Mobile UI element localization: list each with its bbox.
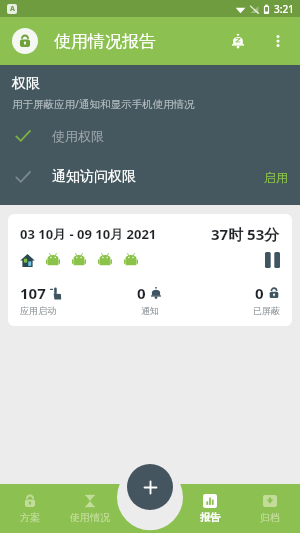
staticText: 方案 bbox=[20, 511, 40, 524]
button[interactable]: App icon bbox=[12, 28, 38, 54]
button[interactable]: 使用情况 bbox=[60, 484, 120, 533]
staticText: 归档 bbox=[260, 511, 280, 524]
button[interactable]: 报告 bbox=[180, 484, 240, 533]
button[interactable]: 通知访问权限 bbox=[12, 162, 288, 192]
staticText: 通知 bbox=[141, 305, 159, 316]
staticText: 0 bbox=[255, 283, 264, 303]
button[interactable]: Notifications bbox=[218, 21, 258, 61]
button[interactable]: 方案 bbox=[0, 484, 60, 533]
button[interactable]: 使用权限 bbox=[12, 122, 288, 150]
staticText: 03 10月 - 09 10月 2021 bbox=[20, 225, 157, 243]
staticText: 107 bbox=[20, 283, 46, 303]
staticText: 使用权限 bbox=[52, 128, 104, 144]
staticText: 应用启动 bbox=[20, 305, 56, 316]
button[interactable]: 03 10月 - 09 10月 2021 bbox=[8, 214, 292, 326]
button[interactable]: More options bbox=[258, 21, 298, 61]
staticText: 37时 53分 bbox=[211, 224, 280, 244]
staticText: 通知访问权限 bbox=[52, 168, 136, 186]
staticText: 启用 bbox=[264, 170, 288, 185]
staticText: 已屏蔽 bbox=[253, 305, 280, 316]
staticText: A bbox=[10, 4, 15, 14]
button[interactable]: 归档 bbox=[240, 484, 300, 533]
staticText: 使用情况报告 bbox=[54, 31, 156, 52]
staticText: 3:21 bbox=[274, 2, 294, 16]
staticText: 权限 bbox=[12, 75, 40, 93]
staticText: 报告 bbox=[200, 511, 220, 524]
staticText: 0 bbox=[137, 283, 146, 303]
button[interactable]: Add bbox=[127, 464, 173, 510]
staticText: 使用情况 bbox=[70, 511, 110, 524]
staticText: 用于屏蔽应用/通知和显示手机使用情况 bbox=[12, 97, 195, 111]
